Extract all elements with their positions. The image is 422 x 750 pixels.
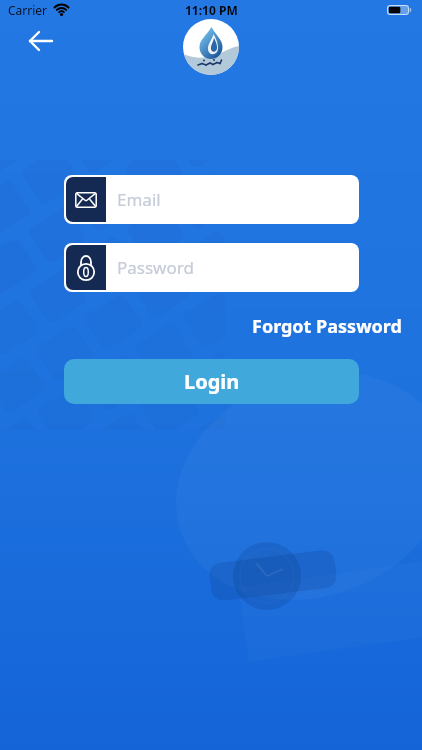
staticText: 11:10 PM <box>185 2 238 18</box>
button[interactable] <box>20 21 62 61</box>
staticText: Email <box>117 188 161 211</box>
staticText: Forgot Password <box>252 314 402 339</box>
button[interactable]: Password <box>64 243 359 292</box>
staticText: Carrier <box>8 2 48 18</box>
button[interactable]: Login <box>64 359 359 404</box>
button[interactable]: Email <box>64 175 359 224</box>
button[interactable]: Forgot Password <box>232 312 402 340</box>
staticText: Password <box>117 256 194 279</box>
staticText: Login <box>184 368 240 395</box>
